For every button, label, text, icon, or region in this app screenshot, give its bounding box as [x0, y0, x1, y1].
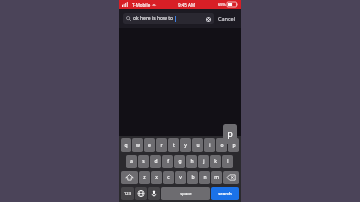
button[interactable]: Voice input	[148, 187, 160, 200]
staticText: a	[130, 158, 133, 165]
staticText: p	[227, 127, 233, 139]
staticText: 123	[124, 191, 131, 196]
button[interactable]: a	[126, 155, 137, 168]
staticText: r	[160, 142, 163, 149]
staticText: search	[218, 191, 232, 197]
staticText: ok here is how to	[133, 15, 174, 22]
staticText: m	[214, 174, 219, 181]
button[interactable]: search	[211, 187, 239, 200]
button[interactable]: q	[121, 138, 131, 152]
button[interactable]: d	[150, 155, 161, 168]
staticText: 65%	[218, 2, 226, 7]
button[interactable]: h	[186, 155, 197, 168]
button[interactable]: f	[162, 155, 173, 168]
staticText: b	[191, 174, 195, 181]
button[interactable]: s	[138, 155, 149, 168]
button[interactable]: o	[216, 138, 227, 152]
staticText: o	[220, 142, 224, 149]
staticText: x	[155, 174, 158, 181]
button[interactable]: Cancel	[217, 13, 237, 24]
staticText: u	[196, 142, 200, 149]
staticText: k	[214, 158, 217, 165]
staticText: j	[203, 158, 205, 165]
button[interactable]: l	[222, 155, 233, 168]
button[interactable]: p	[228, 138, 239, 152]
button[interactable]: x	[151, 171, 162, 184]
button[interactable]: Clear search	[205, 16, 211, 22]
button[interactable]: z	[139, 171, 150, 184]
button[interactable]: Shift	[121, 171, 138, 184]
staticText: Cancel	[218, 15, 236, 22]
button[interactable]: b	[187, 171, 198, 184]
staticText: g	[178, 158, 182, 165]
staticText: l	[227, 158, 229, 165]
button[interactable]: g	[174, 155, 185, 168]
staticText: v	[179, 174, 182, 181]
staticText: 9:45 AM	[178, 2, 196, 8]
button[interactable]: ok here is how to	[123, 13, 214, 24]
staticText: q	[124, 142, 128, 149]
button[interactable]: space	[161, 187, 210, 200]
button[interactable]: p	[223, 124, 237, 144]
staticText: n	[203, 174, 207, 181]
button[interactable]: j	[198, 155, 209, 168]
staticText: y	[184, 142, 187, 149]
button[interactable]: r	[156, 138, 167, 152]
button[interactable]: Backspace	[223, 171, 239, 184]
button[interactable]: y	[180, 138, 191, 152]
staticText: p	[232, 142, 236, 149]
button[interactable]: i	[204, 138, 215, 152]
staticText: c	[167, 174, 170, 181]
button[interactable]: k	[210, 155, 221, 168]
staticText: s	[142, 158, 145, 165]
staticText: t	[173, 142, 175, 149]
button[interactable]: t	[168, 138, 179, 152]
staticText: z	[143, 174, 146, 181]
staticText: d	[154, 158, 158, 165]
button[interactable]: w	[132, 138, 143, 152]
staticText: i	[209, 142, 211, 149]
button[interactable]: e	[144, 138, 155, 152]
button[interactable]: c	[163, 171, 174, 184]
button[interactable]: Switch keyboard	[135, 187, 147, 200]
staticText: w	[136, 142, 140, 149]
staticText: e	[148, 142, 151, 149]
button[interactable]: m	[211, 171, 222, 184]
staticText: space	[180, 191, 192, 197]
button[interactable]: u	[192, 138, 203, 152]
staticText: f	[167, 158, 169, 165]
button[interactable]: v	[175, 171, 186, 184]
button[interactable]: 123	[121, 187, 134, 200]
staticText: h	[190, 158, 194, 165]
button[interactable]: n	[199, 171, 210, 184]
staticText: T-Mobile	[132, 2, 151, 8]
